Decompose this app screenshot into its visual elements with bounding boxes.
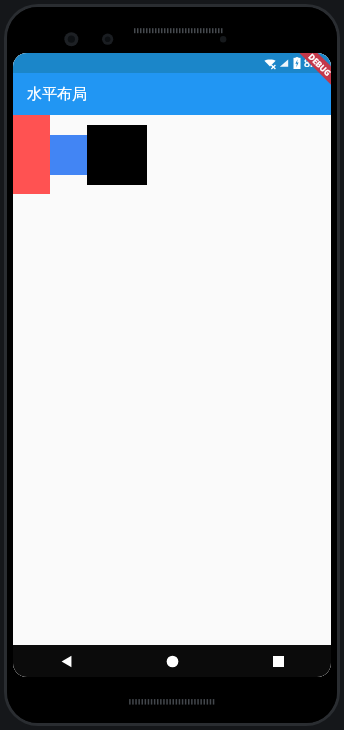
- button[interactable]: Recent apps: [225, 645, 331, 677]
- button[interactable]: Back: [13, 645, 119, 677]
- staticText: 水平布局: [27, 85, 87, 104]
- button[interactable]: Home: [119, 645, 225, 677]
- staticText: DEBUG: [306, 53, 331, 78]
- staticText: 8:49: [304, 56, 325, 70]
